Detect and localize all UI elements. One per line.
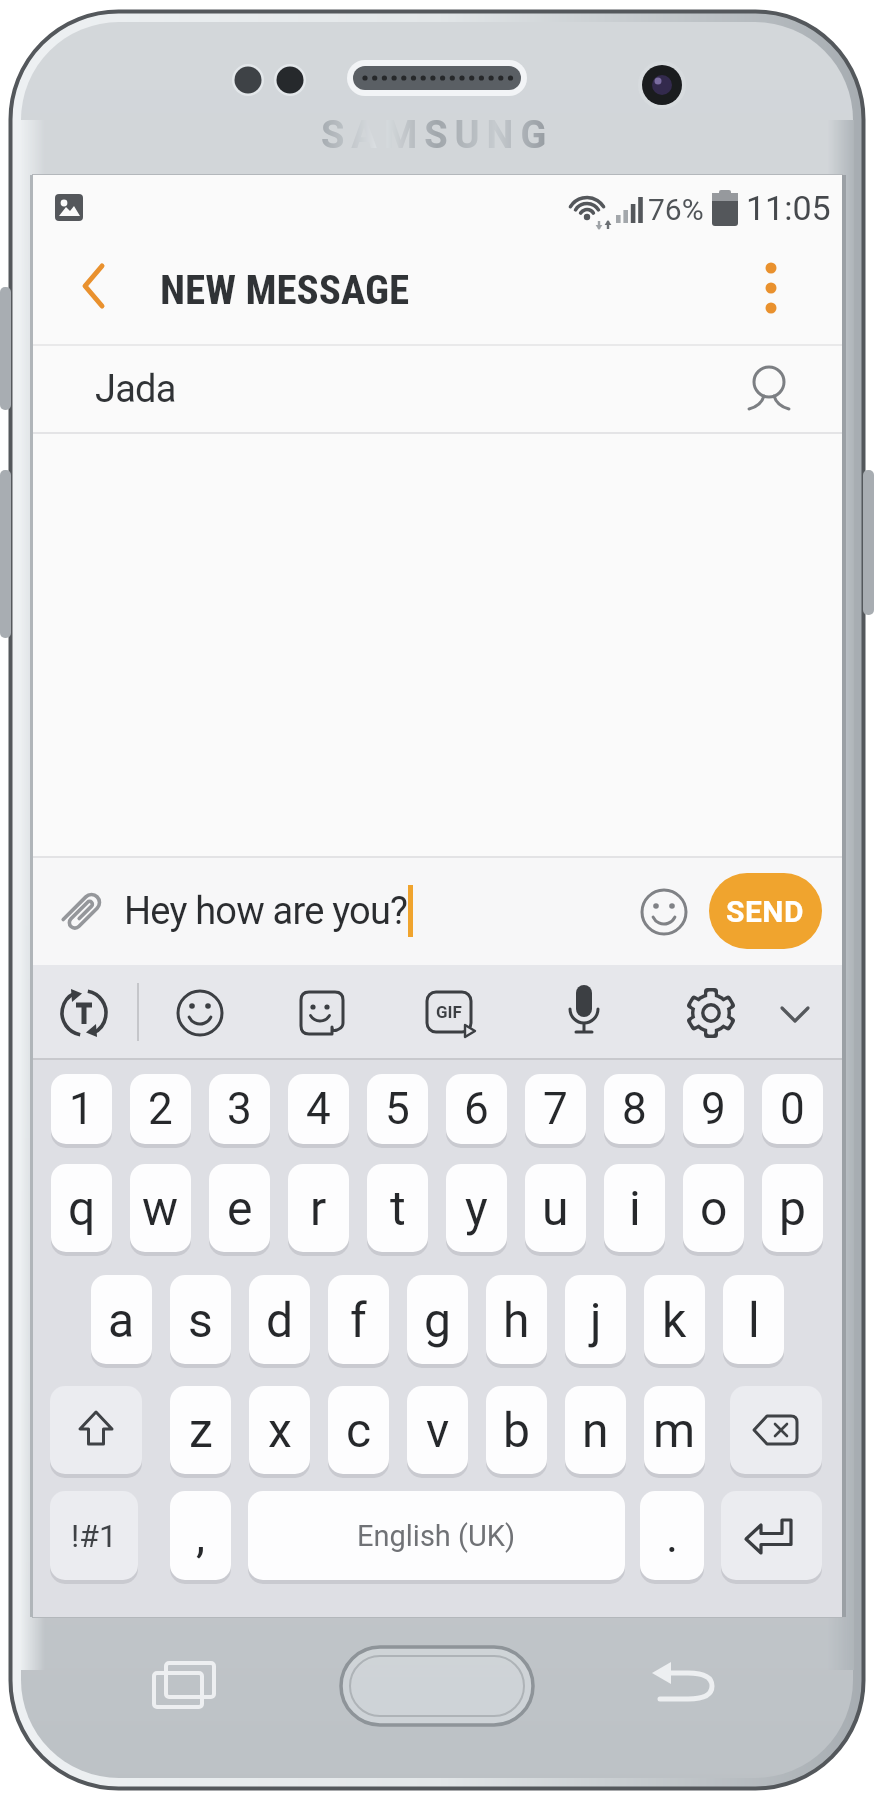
button[interactable]: 6	[446, 1074, 507, 1144]
staticText: t	[390, 1180, 406, 1236]
staticText: m	[653, 1402, 696, 1458]
button[interactable]: w	[130, 1164, 191, 1252]
staticText: k	[662, 1292, 687, 1348]
button[interactable]	[730, 1386, 822, 1474]
staticText: s	[188, 1292, 213, 1348]
button[interactable]: f	[328, 1275, 389, 1364]
staticText: 1	[69, 1083, 94, 1135]
button[interactable]	[58, 987, 110, 1039]
staticText: n	[582, 1402, 609, 1458]
button[interactable]: i	[604, 1164, 665, 1252]
button[interactable]: 1	[51, 1074, 112, 1144]
staticText: l	[748, 1292, 760, 1348]
button[interactable]: .	[640, 1491, 704, 1580]
staticText: f	[350, 1292, 367, 1348]
staticText: 5	[385, 1083, 410, 1135]
staticText: 76%	[648, 192, 704, 227]
staticText: e	[227, 1180, 253, 1236]
staticText: ,	[196, 1509, 206, 1563]
staticText: b	[503, 1402, 530, 1458]
staticText: 11:05	[746, 188, 831, 228]
staticText: x	[268, 1402, 292, 1458]
button[interactable]: j	[565, 1275, 626, 1364]
staticText: 6	[464, 1083, 489, 1135]
button[interactable]: d	[249, 1275, 310, 1364]
button[interactable]: o	[683, 1164, 744, 1252]
button[interactable]: t	[367, 1164, 428, 1252]
button[interactable]: ,	[170, 1491, 231, 1580]
button[interactable]: Jada	[33, 346, 842, 433]
staticText: !#1	[71, 1517, 117, 1555]
staticText: a	[108, 1292, 135, 1348]
staticText: j	[590, 1292, 602, 1348]
staticText: g	[424, 1292, 451, 1348]
button[interactable]: GIF	[424, 987, 480, 1039]
button[interactable]: s	[170, 1275, 231, 1364]
button[interactable]: z	[170, 1386, 231, 1474]
button[interactable]	[685, 987, 737, 1039]
button[interactable]: 0	[762, 1074, 823, 1144]
button[interactable]: y	[446, 1164, 507, 1252]
staticText: SAMSUNG	[321, 113, 554, 158]
staticText: q	[68, 1180, 96, 1236]
staticText: o	[700, 1180, 728, 1236]
staticText: 7	[543, 1083, 568, 1135]
button[interactable]: u	[525, 1164, 586, 1252]
button[interactable]: g	[407, 1275, 468, 1364]
staticText: 4	[306, 1083, 331, 1135]
button[interactable]: r	[288, 1164, 349, 1252]
button[interactable]	[296, 987, 348, 1039]
button[interactable]: m	[644, 1386, 705, 1474]
button[interactable]	[50, 1386, 142, 1474]
staticText: .	[666, 1509, 679, 1563]
staticText: c	[346, 1402, 372, 1458]
staticText: y	[465, 1180, 488, 1236]
button[interactable]	[638, 886, 690, 938]
button[interactable]	[70, 256, 120, 318]
button[interactable]	[744, 256, 798, 320]
button[interactable]: 2	[130, 1074, 191, 1144]
button[interactable]: c	[328, 1386, 389, 1474]
staticText: p	[779, 1180, 806, 1236]
button[interactable]: v	[407, 1386, 468, 1474]
staticText: d	[266, 1292, 294, 1348]
button[interactable]	[772, 994, 818, 1034]
staticText: 2	[148, 1083, 173, 1135]
staticText: i	[629, 1180, 641, 1236]
staticText: Jada	[95, 367, 176, 412]
button[interactable]: a	[91, 1275, 152, 1364]
staticText: 0	[780, 1083, 805, 1135]
button[interactable]: 4	[288, 1074, 349, 1144]
staticText: SEND	[726, 894, 805, 929]
button[interactable]: q	[51, 1164, 112, 1252]
button[interactable]	[558, 983, 610, 1039]
button[interactable]: 7	[525, 1074, 586, 1144]
button[interactable]: SEND	[709, 873, 822, 949]
button[interactable]: 5	[367, 1074, 428, 1144]
button[interactable]: l	[723, 1275, 784, 1364]
button[interactable]: k	[644, 1275, 705, 1364]
button[interactable]: b	[486, 1386, 547, 1474]
button[interactable]: 9	[683, 1074, 744, 1144]
staticText: v	[426, 1402, 450, 1458]
staticText: u	[542, 1180, 569, 1236]
staticText: Hey how are you?	[124, 889, 408, 934]
button[interactable]: h	[486, 1275, 547, 1364]
staticText: 3	[227, 1083, 252, 1135]
staticText: NEW MESSAGE	[160, 266, 410, 314]
button[interactable]: e	[209, 1164, 270, 1252]
button[interactable]: x	[249, 1386, 310, 1474]
button[interactable]	[51, 879, 115, 943]
button[interactable]: 3	[209, 1074, 270, 1144]
button[interactable]: English (UK)	[248, 1491, 625, 1580]
staticText: GIF	[436, 1002, 462, 1022]
button[interactable]: n	[565, 1386, 626, 1474]
staticText: h	[503, 1292, 530, 1348]
staticText: 8	[622, 1083, 647, 1135]
button[interactable]	[721, 1491, 822, 1580]
button[interactable]: p	[762, 1164, 823, 1252]
button[interactable]: 8	[604, 1074, 665, 1144]
button[interactable]: !#1	[50, 1491, 138, 1580]
staticText: r	[310, 1180, 327, 1236]
button[interactable]	[174, 987, 226, 1039]
